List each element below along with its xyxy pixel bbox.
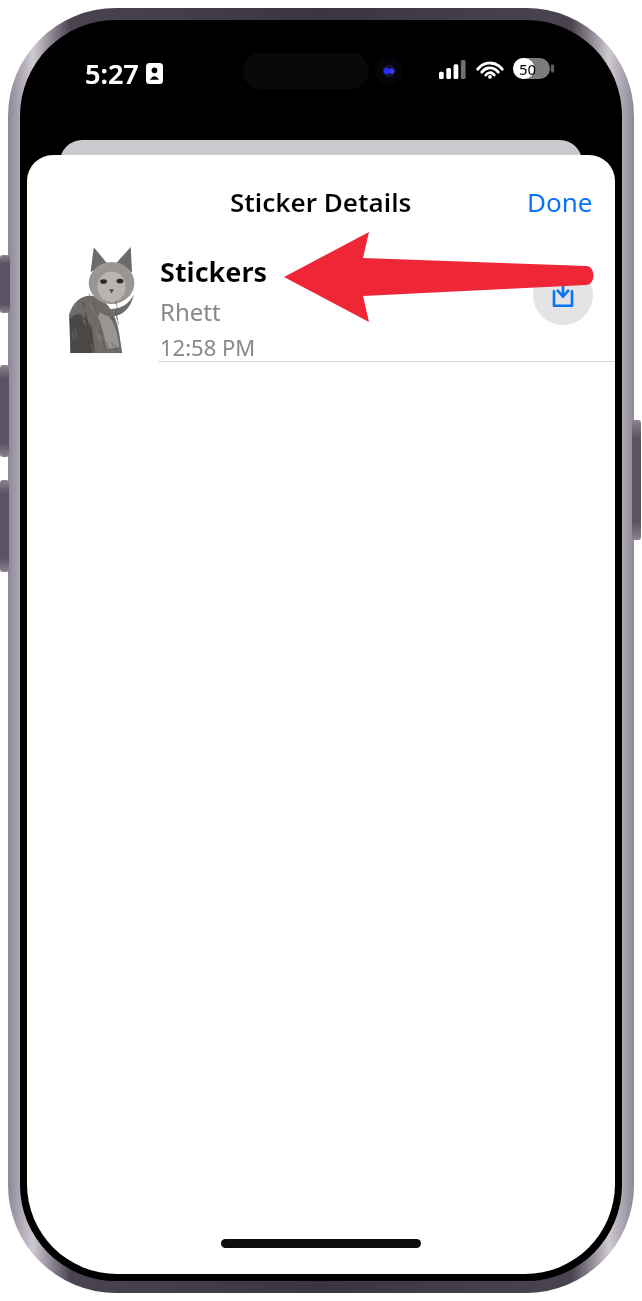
button[interactable]: Save sticker: [533, 265, 593, 325]
staticText: Done: [527, 184, 593, 219]
staticText: Sticker Details: [230, 184, 412, 219]
staticText: 12:58 PM: [160, 332, 256, 361]
button[interactable]: Stickers: [27, 253, 615, 361]
staticText: Rhett: [160, 295, 221, 328]
button[interactable]: Done: [505, 176, 615, 227]
staticText: 50: [519, 59, 537, 79]
staticText: 5:27: [85, 55, 139, 92]
staticText: Stickers: [160, 253, 268, 290]
